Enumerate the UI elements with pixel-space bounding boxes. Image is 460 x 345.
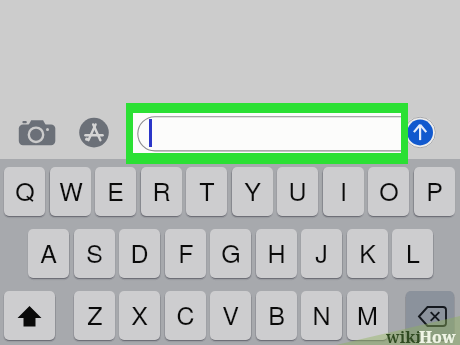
- button[interactable]: [133, 113, 401, 153]
- button[interactable]: X: [119, 291, 160, 340]
- staticText: O: [379, 172, 399, 208]
- button[interactable]: W: [50, 167, 91, 216]
- button[interactable]: F: [165, 229, 206, 278]
- button[interactable]: Shift: [4, 291, 55, 340]
- staticText: W: [59, 172, 83, 208]
- button[interactable]: Z: [74, 291, 115, 340]
- button[interactable]: P: [414, 167, 455, 216]
- staticText: I: [340, 172, 347, 208]
- staticText: S: [86, 234, 103, 270]
- button[interactable]: U: [277, 167, 318, 216]
- button[interactable]: Y: [232, 167, 273, 216]
- button[interactable]: Camera: [18, 119, 56, 147]
- button[interactable]: N: [301, 291, 342, 340]
- staticText: X: [131, 296, 148, 332]
- button[interactable]: L: [392, 229, 433, 278]
- staticText: G: [221, 234, 241, 270]
- button[interactable]: V: [210, 291, 251, 340]
- button[interactable]: I: [323, 167, 364, 216]
- staticText: R: [152, 172, 171, 208]
- button[interactable]: K: [347, 229, 388, 278]
- staticText: How: [419, 326, 456, 345]
- button[interactable]: E: [95, 167, 136, 216]
- staticText: K: [359, 234, 376, 270]
- staticText: M: [357, 296, 378, 332]
- staticText: A: [40, 234, 57, 270]
- staticText: F: [178, 234, 194, 270]
- button[interactable]: R: [141, 167, 182, 216]
- button[interactable]: G: [210, 229, 251, 278]
- staticText: T: [199, 172, 215, 208]
- staticText: Z: [87, 296, 103, 332]
- staticText: P: [426, 172, 443, 208]
- button[interactable]: Send: [404, 116, 437, 149]
- staticText: N: [312, 296, 331, 332]
- button[interactable]: J: [301, 229, 342, 278]
- staticText: E: [107, 172, 124, 208]
- staticText: wiki: [386, 326, 422, 345]
- staticText: D: [130, 234, 149, 270]
- button[interactable]: D: [119, 229, 160, 278]
- staticText: B: [268, 296, 285, 332]
- button[interactable]: C: [165, 291, 206, 340]
- staticText: C: [176, 296, 195, 332]
- button[interactable]: Q: [4, 167, 45, 216]
- staticText: V: [222, 296, 239, 332]
- staticText: Y: [244, 172, 261, 208]
- button[interactable]: S: [74, 229, 115, 278]
- staticText: L: [406, 234, 420, 270]
- button[interactable]: App Store: [79, 118, 109, 148]
- button[interactable]: M: [347, 291, 388, 340]
- button[interactable]: O: [368, 167, 409, 216]
- button[interactable]: B: [256, 291, 297, 340]
- button[interactable]: A: [28, 229, 69, 278]
- button[interactable]: Delete: [406, 291, 454, 340]
- staticText: U: [288, 172, 307, 208]
- staticText: H: [267, 234, 286, 270]
- staticText: Q: [15, 172, 35, 208]
- staticText: J: [315, 234, 328, 270]
- button[interactable]: T: [186, 167, 227, 216]
- button[interactable]: H: [256, 229, 297, 278]
